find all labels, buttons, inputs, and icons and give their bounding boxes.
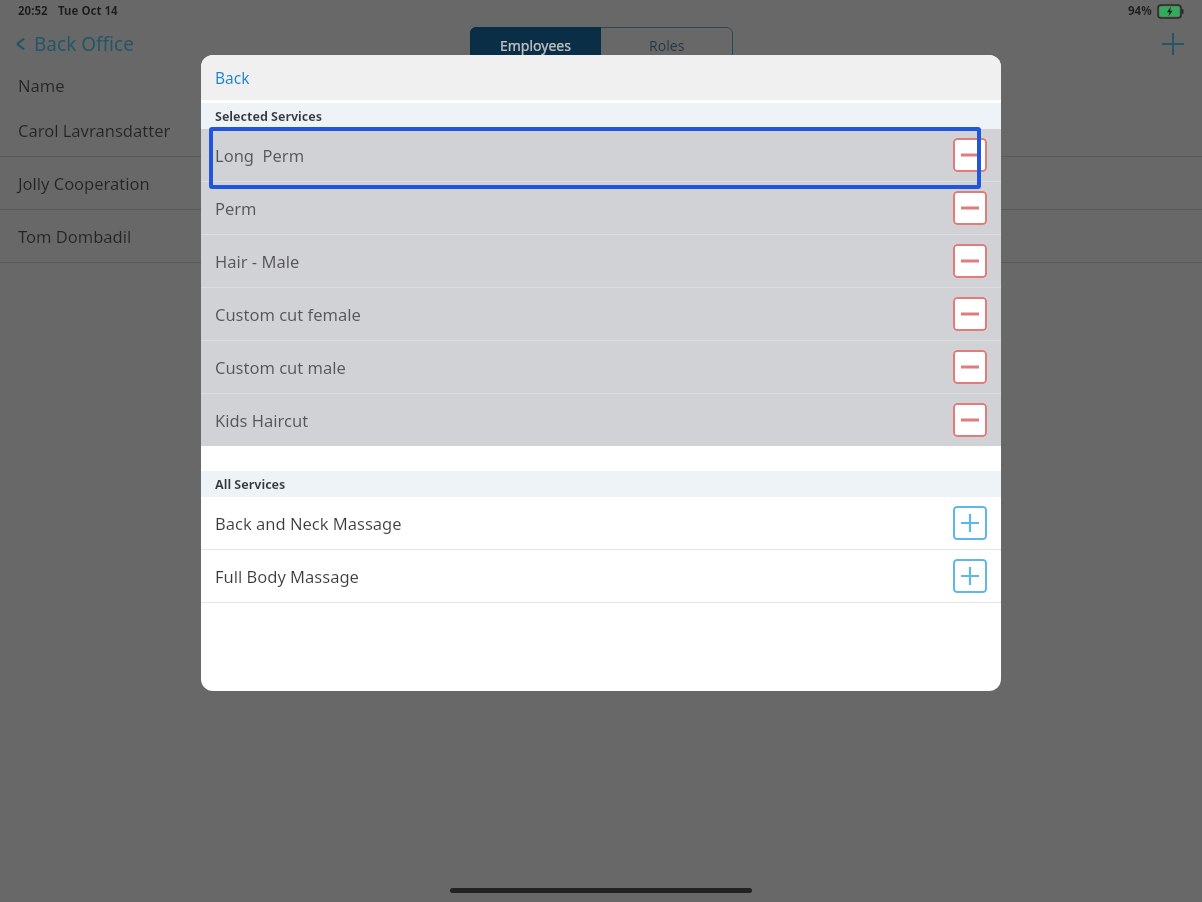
staticText: All Services (215, 476, 286, 493)
staticText: Back (215, 67, 250, 88)
button[interactable]: Kids Haircut (201, 394, 1001, 446)
button[interactable]: Add service (953, 506, 987, 540)
staticText: Carol Lavransdatter (18, 119, 171, 141)
button[interactable]: Back Office (12, 31, 136, 57)
button[interactable]: Long Perm (201, 129, 1001, 181)
button[interactable]: Custom cut female (201, 288, 1001, 340)
button[interactable]: Perm (201, 182, 1001, 234)
button[interactable]: Remove service (953, 244, 987, 278)
staticText: Tom Dombadil (18, 225, 132, 247)
button[interactable]: Remove service (953, 350, 987, 384)
button[interactable]: Full Body Massage (201, 550, 1001, 602)
staticText: Full Body Massage (215, 565, 359, 587)
button[interactable]: Remove service (953, 191, 987, 225)
staticText: Jolly Cooperation (18, 172, 150, 194)
staticText: Kids Haircut (215, 409, 309, 431)
staticText: Selected Services (215, 108, 323, 125)
staticText: Back Office (34, 31, 134, 57)
staticText: Custom cut female (215, 303, 361, 325)
staticText: 94% (1128, 3, 1152, 19)
staticText: 20:52 (18, 3, 48, 19)
button[interactable]: Jolly Cooperation (0, 157, 1202, 209)
staticText: Custom cut male (215, 356, 346, 378)
staticText: Tue Oct 14 (58, 3, 118, 19)
button[interactable]: Hair - Male (201, 235, 1001, 287)
button[interactable]: Employees (470, 27, 601, 63)
button[interactable]: Custom cut male (201, 341, 1001, 393)
button[interactable]: Back (201, 61, 264, 94)
button[interactable]: Roles (601, 27, 733, 63)
button[interactable]: Carol Lavransdatter (0, 104, 1202, 156)
button[interactable]: Remove service (953, 403, 987, 437)
button[interactable]: Add service (953, 559, 987, 593)
staticText: Back and Neck Massage (215, 512, 402, 534)
staticText: Long Perm (215, 144, 305, 166)
staticText: Roles (649, 36, 685, 55)
staticText: Hair - Male (215, 250, 300, 272)
button[interactable]: Remove service (953, 138, 987, 172)
button[interactable]: Add (1156, 27, 1190, 61)
button[interactable]: Remove service (953, 297, 987, 331)
staticText: Perm (215, 197, 257, 219)
staticText: Name (18, 74, 65, 96)
staticText: Employees (500, 36, 571, 55)
button[interactable]: Tom Dombadil (0, 210, 1202, 262)
button[interactable]: Back and Neck Massage (201, 497, 1001, 549)
